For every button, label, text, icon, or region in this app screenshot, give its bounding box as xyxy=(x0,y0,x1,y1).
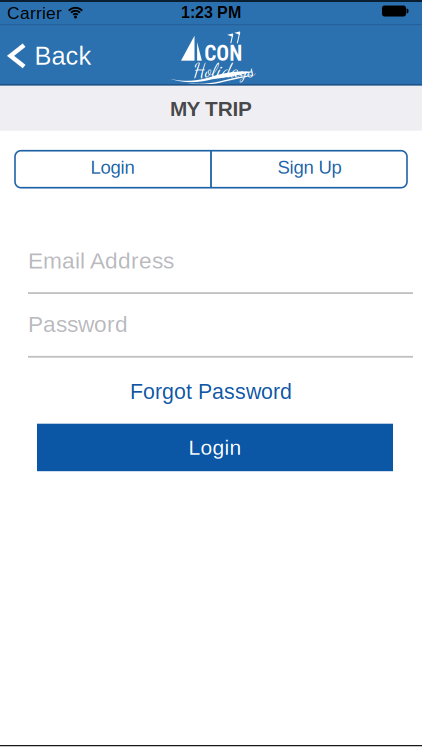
button[interactable]: Login xyxy=(37,424,393,471)
button[interactable]: Sign Up xyxy=(212,151,407,188)
button[interactable]: Password xyxy=(0,312,422,358)
staticText: Login xyxy=(188,436,241,459)
staticText: Email Address xyxy=(28,248,174,273)
staticText: Forgot Password xyxy=(130,380,292,404)
staticText: MY TRIP xyxy=(170,97,252,120)
button[interactable]: Forgot Password xyxy=(130,358,292,404)
staticText: Sign Up xyxy=(277,157,341,177)
button[interactable]: Back xyxy=(0,24,91,70)
staticText: Holidays xyxy=(193,58,255,82)
staticText: Back xyxy=(34,42,91,70)
staticText: 1:23 PM xyxy=(181,4,241,21)
staticText: Login xyxy=(90,157,134,177)
button[interactable]: Email Address xyxy=(0,249,422,294)
staticText: Carrier xyxy=(7,3,62,23)
staticText: Password xyxy=(28,311,128,337)
button[interactable]: Login xyxy=(15,151,210,188)
staticText: CON xyxy=(204,41,242,66)
